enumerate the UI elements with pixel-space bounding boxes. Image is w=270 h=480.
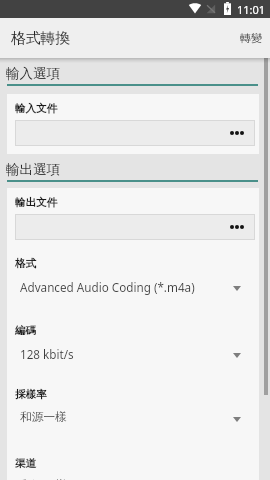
button[interactable]: 轉變 — [232, 18, 270, 58]
staticText: 格式轉換 — [11, 29, 71, 48]
staticText: 128 kbit/s — [20, 346, 74, 362]
staticText: 輸出選項 — [6, 161, 60, 178]
staticText: 和源一樣 — [20, 410, 67, 425]
staticText: 轉變 — [240, 31, 262, 45]
staticText: 格式 — [15, 257, 36, 270]
staticText: 編碼 — [15, 324, 36, 337]
button[interactable]: 和源一樣 — [7, 478, 259, 480]
button[interactable]: 和源一樣 — [7, 409, 259, 426]
button[interactable]: Advanced Audio Coding (*.m4a) — [7, 278, 259, 295]
staticText: 輸入選項 — [6, 65, 60, 82]
staticText: 輸入文件 — [15, 102, 57, 115]
staticText: 輸出文件 — [15, 196, 57, 209]
button[interactable]: Choose file — [15, 120, 255, 146]
button[interactable]: Choose file — [15, 214, 255, 240]
staticText: 採樣率 — [15, 388, 47, 401]
button[interactable]: 128 kbit/s — [7, 345, 259, 362]
staticText: Advanced Audio Coding (*.m4a) — [20, 279, 195, 295]
staticText: 和源一樣 — [20, 478, 67, 480]
staticText: 渠道 — [15, 457, 36, 470]
staticText: 11:01 — [237, 2, 266, 17]
